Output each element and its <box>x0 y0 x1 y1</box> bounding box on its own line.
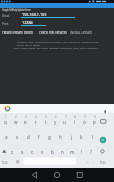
staticText: @ <box>16 159 20 164</box>
staticText: CHECK FOR UPDATES <box>39 31 67 35</box>
button[interactable]: b <box>48 148 57 156</box>
button[interactable]: @ <box>14 158 21 165</box>
button[interactable]: q <box>1 118 10 126</box>
staticText: v <box>41 149 44 155</box>
staticText: w <box>14 119 18 125</box>
staticText: d <box>27 134 30 140</box>
staticText: u <box>63 119 66 125</box>
staticText: 7 <box>65 115 67 118</box>
staticText: ! <box>81 149 83 155</box>
button[interactable]: v <box>38 148 47 156</box>
button[interactable]: CREATE/UPDATE DEVICE <box>2 31 33 35</box>
button[interactable]: d <box>24 133 33 141</box>
button[interactable] <box>38 168 76 182</box>
staticText: x <box>21 149 24 155</box>
staticText: h <box>59 134 62 140</box>
staticText: 3 <box>25 115 27 118</box>
staticText: 12384 <box>22 21 33 25</box>
staticText: 2 <box>15 115 17 118</box>
staticText: You demand-by the listed devices will be… <box>13 46 98 49</box>
staticText: 8 <box>74 115 76 118</box>
button[interactable]: g <box>45 133 54 141</box>
button[interactable]: c <box>28 148 37 156</box>
button[interactable]: CHECK FOR UPDATES <box>39 31 67 35</box>
staticText: p <box>93 119 96 125</box>
button[interactable]: , <box>91 157 96 164</box>
button[interactable] <box>0 168 38 182</box>
staticText: ?123 <box>2 161 7 164</box>
button[interactable]: f <box>34 133 43 141</box>
staticText: 9 <box>84 115 86 118</box>
staticText: . <box>87 158 89 164</box>
staticText: q <box>4 119 7 125</box>
button[interactable]: x <box>18 148 27 156</box>
button[interactable]: w <box>11 118 20 126</box>
staticText: e <box>24 119 27 125</box>
staticText: 4 <box>35 115 37 118</box>
staticText: a <box>5 134 8 140</box>
button[interactable]: u <box>60 118 69 126</box>
button[interactable]: a <box>2 133 11 141</box>
staticText: t <box>45 119 47 125</box>
button[interactable]: h <box>56 133 65 141</box>
button[interactable] <box>21 12 76 18</box>
staticText: ?123 <box>100 161 105 164</box>
button[interactable]: s <box>13 133 22 141</box>
button[interactable]: m <box>68 148 77 156</box>
button[interactable]: n <box>58 148 67 156</box>
button[interactable]: p <box>90 118 99 126</box>
staticText: Check for updates listed, tap one to dow… <box>17 40 104 47</box>
staticText: j <box>71 134 73 140</box>
staticText: b <box>51 149 54 155</box>
staticText: Port <box>2 22 9 26</box>
staticText: k <box>80 134 83 140</box>
staticText: , <box>93 158 94 163</box>
staticText: INSTALL UPDATE <box>70 31 92 35</box>
staticText: c <box>31 149 34 155</box>
button[interactable]: r <box>31 118 40 126</box>
staticText: CREATE/UPDATE DEVICE <box>2 31 33 35</box>
staticText: Host <box>2 14 10 18</box>
button[interactable]: o <box>80 118 89 126</box>
staticText: z <box>11 149 14 155</box>
staticText: 0 <box>94 115 96 118</box>
staticText: i <box>74 119 76 125</box>
staticText: 1 <box>5 115 7 118</box>
staticText: Google SelfHelp Update Server <box>2 8 31 11</box>
button[interactable]: j <box>67 133 76 141</box>
staticText: 192.168.1.103 <box>22 13 47 17</box>
staticText: f <box>38 134 40 140</box>
staticText: y <box>54 119 57 125</box>
button[interactable]: z <box>8 148 17 156</box>
button[interactable]: k <box>77 133 86 141</box>
button[interactable]: INSTALL UPDATE <box>70 31 92 35</box>
button[interactable]: ?123 <box>100 161 105 164</box>
button[interactable]: l <box>88 133 97 141</box>
staticText: 6 <box>55 115 57 118</box>
button[interactable]: ! <box>77 148 86 156</box>
staticText: o <box>83 119 86 125</box>
button[interactable] <box>76 168 114 182</box>
staticText: ? <box>90 149 92 155</box>
button[interactable]: . <box>85 157 91 164</box>
button[interactable]: y <box>51 118 60 126</box>
button[interactable]: t <box>41 118 50 126</box>
button[interactable]: e <box>21 118 30 126</box>
staticText: r <box>35 119 37 125</box>
staticText: 5 <box>45 115 47 118</box>
button[interactable]: ? <box>86 148 95 156</box>
staticText: n <box>61 149 64 155</box>
staticText: m <box>70 149 75 155</box>
button[interactable] <box>21 20 47 26</box>
staticText: l <box>92 134 94 140</box>
staticText: g <box>48 134 51 140</box>
staticText: s <box>16 134 19 140</box>
button[interactable]: i <box>70 118 79 126</box>
button[interactable]: ?123 <box>2 161 7 164</box>
